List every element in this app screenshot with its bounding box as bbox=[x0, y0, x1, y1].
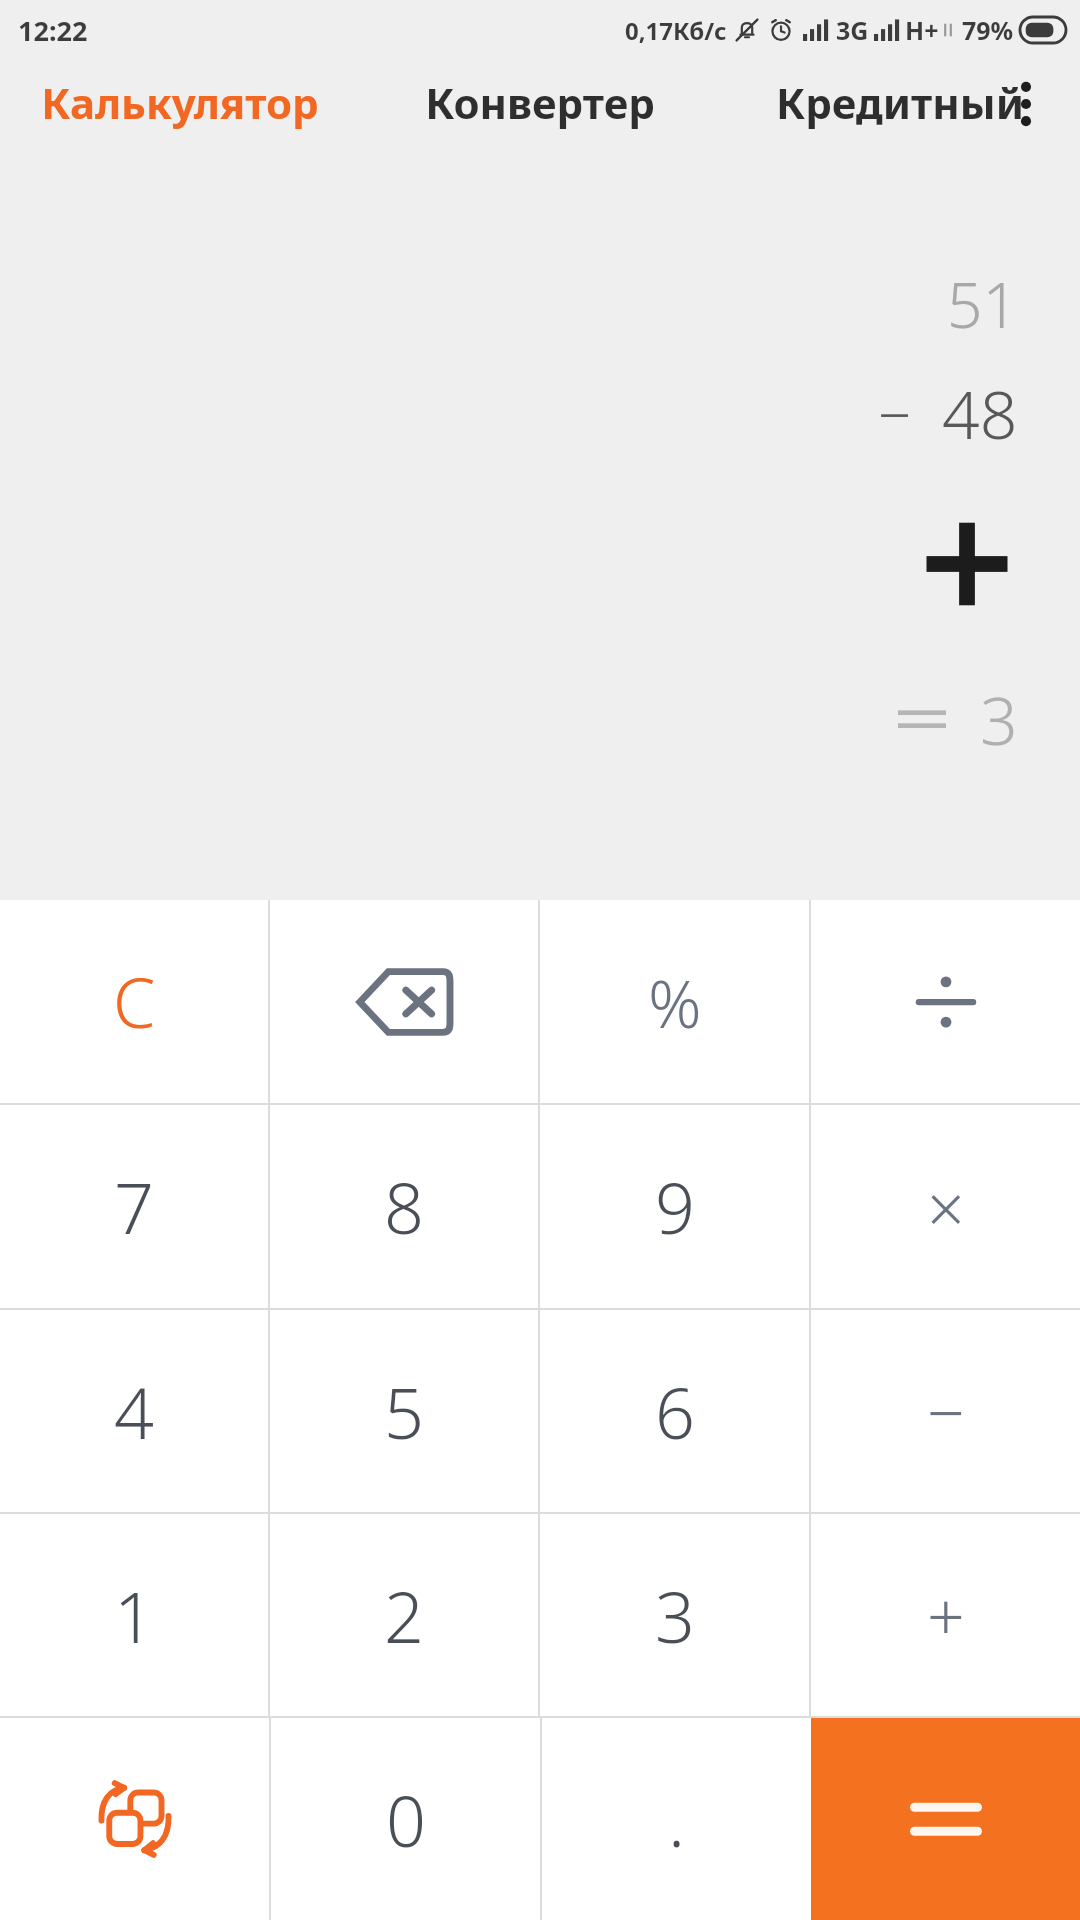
staticText: 0,17Кб/с bbox=[625, 14, 727, 47]
staticText: 9 bbox=[655, 1159, 695, 1254]
button[interactable]: Backspace bbox=[270, 900, 538, 1103]
staticText: H+ bbox=[905, 13, 939, 47]
button[interactable]: Multiply bbox=[811, 1105, 1080, 1308]
staticText: × bbox=[927, 1162, 965, 1252]
staticText: 1 bbox=[114, 1568, 154, 1663]
button[interactable]: 8 bbox=[270, 1105, 538, 1308]
button[interactable]: 1 bbox=[0, 1514, 268, 1716]
staticText: % bbox=[648, 957, 702, 1047]
staticText: 12:22 bbox=[18, 12, 88, 49]
button[interactable]: Конвертер bbox=[360, 60, 720, 200]
button[interactable]: 9 bbox=[540, 1105, 809, 1308]
staticText: − bbox=[878, 374, 912, 453]
staticText: Кредитный bbox=[776, 74, 1024, 131]
button[interactable]: Divide bbox=[811, 900, 1080, 1103]
button[interactable]: 5 bbox=[270, 1310, 538, 1512]
button[interactable]: 7 bbox=[0, 1105, 268, 1308]
button[interactable]: Minus bbox=[811, 1310, 1080, 1512]
staticText: + bbox=[927, 1570, 965, 1660]
staticText: C bbox=[113, 955, 156, 1048]
button[interactable]: 6 bbox=[540, 1310, 809, 1512]
staticText: 3 bbox=[980, 674, 1018, 764]
staticText: 48 bbox=[942, 368, 1018, 458]
button[interactable]: 0 bbox=[271, 1718, 540, 1920]
staticText: 3 bbox=[655, 1568, 695, 1663]
staticText: Калькулятор bbox=[41, 74, 319, 131]
staticText: Конвертер bbox=[425, 74, 655, 131]
staticText: 2 bbox=[384, 1568, 424, 1663]
button[interactable]: 2 bbox=[270, 1514, 538, 1716]
button[interactable]: 3 bbox=[540, 1514, 809, 1716]
button[interactable]: . bbox=[542, 1718, 811, 1920]
staticText: . bbox=[668, 1772, 686, 1867]
button[interactable]: Кредитный bbox=[720, 60, 1080, 200]
staticText: − bbox=[927, 1366, 965, 1456]
button[interactable]: Clear bbox=[0, 900, 268, 1103]
button[interactable]: Equals bbox=[811, 1718, 1080, 1920]
staticText: 6 bbox=[655, 1364, 695, 1459]
staticText: 7 bbox=[114, 1159, 154, 1254]
staticText: 3G bbox=[836, 13, 869, 47]
button[interactable]: Plus bbox=[811, 1514, 1080, 1716]
staticText: 0 bbox=[386, 1772, 426, 1867]
button[interactable]: Swap bbox=[0, 1718, 269, 1920]
button[interactable]: More options bbox=[990, 68, 1062, 140]
staticText: 51 bbox=[947, 262, 1018, 346]
button[interactable]: Калькулятор bbox=[0, 60, 360, 200]
button[interactable]: 4 bbox=[0, 1310, 268, 1512]
staticText: 5 bbox=[384, 1364, 424, 1459]
staticText: 8 bbox=[384, 1159, 424, 1254]
staticText: 4 bbox=[114, 1364, 154, 1459]
staticText: 79% bbox=[962, 13, 1014, 47]
button[interactable]: % bbox=[540, 900, 809, 1103]
